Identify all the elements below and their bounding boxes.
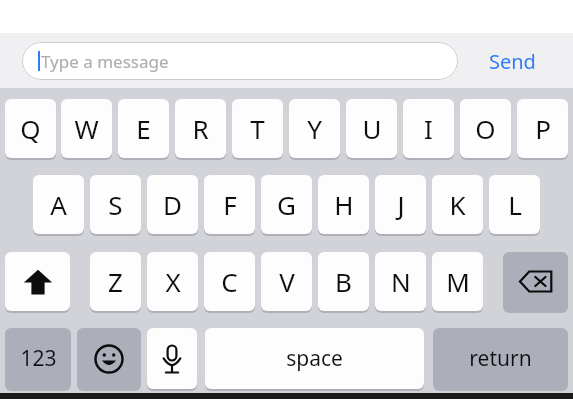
- button[interactable]: L: [489, 175, 540, 234]
- staticText: Type a message: [41, 50, 169, 73]
- button[interactable]: U: [346, 99, 397, 158]
- staticText: Send: [489, 48, 536, 75]
- button[interactable]: C: [204, 252, 255, 311]
- button[interactable]: W: [61, 99, 112, 158]
- button[interactable]: D: [147, 175, 198, 234]
- button[interactable]: O: [460, 99, 511, 158]
- staticText: 123: [20, 344, 57, 373]
- staticText: return: [469, 344, 532, 373]
- staticText: K: [449, 187, 466, 222]
- button[interactable]: 123: [5, 328, 71, 389]
- button[interactable]: P: [517, 99, 568, 158]
- button[interactable]: Emoji: [77, 328, 141, 389]
- staticText: V: [279, 264, 295, 299]
- staticText: J: [397, 187, 405, 222]
- staticText: I: [424, 111, 433, 146]
- button[interactable]: space: [205, 328, 424, 389]
- button[interactable]: S: [90, 175, 141, 234]
- button[interactable]: Backspace: [503, 252, 568, 311]
- button[interactable]: B: [318, 252, 369, 311]
- button[interactable]: Q: [5, 99, 56, 158]
- button[interactable]: Type a message: [22, 42, 458, 80]
- staticText: O: [475, 111, 496, 146]
- button[interactable]: K: [432, 175, 483, 234]
- button[interactable]: I: [403, 99, 454, 158]
- button[interactable]: G: [261, 175, 312, 234]
- staticText: C: [221, 264, 238, 299]
- staticText: E: [136, 111, 151, 146]
- staticText: P: [535, 111, 551, 146]
- staticText: S: [108, 187, 123, 222]
- staticText: A: [50, 187, 67, 222]
- staticText: D: [163, 187, 182, 222]
- button[interactable]: X: [147, 252, 198, 311]
- staticText: space: [286, 344, 343, 373]
- staticText: U: [362, 111, 382, 146]
- button[interactable]: H: [318, 175, 369, 234]
- staticText: L: [508, 187, 522, 222]
- staticText: G: [277, 187, 296, 222]
- button[interactable]: J: [375, 175, 426, 234]
- staticText: B: [335, 264, 352, 299]
- staticText: Q: [20, 111, 41, 146]
- staticText: R: [192, 111, 209, 146]
- button[interactable]: N: [375, 252, 426, 311]
- button[interactable]: T: [232, 99, 283, 158]
- staticText: T: [250, 111, 265, 146]
- button[interactable]: Voice input: [147, 328, 197, 389]
- button[interactable]: Y: [289, 99, 340, 158]
- button[interactable]: A: [33, 175, 84, 234]
- staticText: M: [446, 264, 470, 299]
- staticText: X: [165, 264, 181, 299]
- button[interactable]: V: [261, 252, 312, 311]
- button[interactable]: M: [432, 252, 483, 311]
- staticText: Z: [108, 264, 123, 299]
- button[interactable]: Z: [90, 252, 141, 311]
- staticText: H: [334, 187, 354, 222]
- button[interactable]: E: [118, 99, 169, 158]
- staticText: W: [74, 111, 99, 146]
- button[interactable]: R: [175, 99, 226, 158]
- button[interactable]: Shift: [5, 252, 70, 311]
- staticText: Y: [307, 111, 322, 146]
- button[interactable]: return: [433, 328, 568, 389]
- button[interactable]: Send: [470, 42, 555, 80]
- staticText: F: [223, 187, 237, 222]
- button[interactable]: F: [204, 175, 255, 234]
- staticText: N: [391, 264, 411, 299]
